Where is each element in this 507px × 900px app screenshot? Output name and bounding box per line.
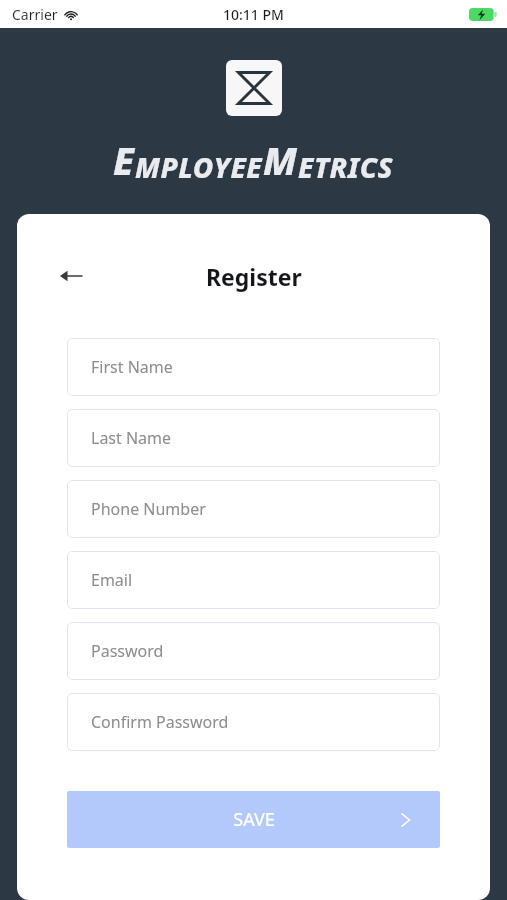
staticText: Confirm Password (91, 711, 229, 733)
staticText: Last Name (91, 427, 172, 449)
button[interactable]: Back (55, 260, 87, 292)
staticText: M (263, 134, 298, 186)
staticText: Carrier (12, 5, 58, 24)
button[interactable]: Phone Number (67, 480, 440, 538)
staticText: Password (91, 640, 164, 662)
staticText: First Name (91, 356, 173, 378)
staticText: ETRICS (298, 148, 394, 186)
staticText: 10:11 PM (223, 5, 284, 24)
staticText: SAVE (233, 807, 275, 832)
button[interactable]: Password (67, 622, 440, 680)
button[interactable]: Confirm Password (67, 693, 440, 751)
button[interactable]: SAVE (67, 791, 440, 848)
staticText: Email (91, 569, 133, 591)
staticText: MPLOYEE (135, 148, 263, 186)
staticText: Phone Number (91, 498, 206, 520)
staticText: Register (206, 261, 302, 292)
button[interactable]: Email (67, 551, 440, 609)
button[interactable]: First Name (67, 338, 440, 396)
staticText: E (113, 134, 135, 186)
button[interactable]: Last Name (67, 409, 440, 467)
